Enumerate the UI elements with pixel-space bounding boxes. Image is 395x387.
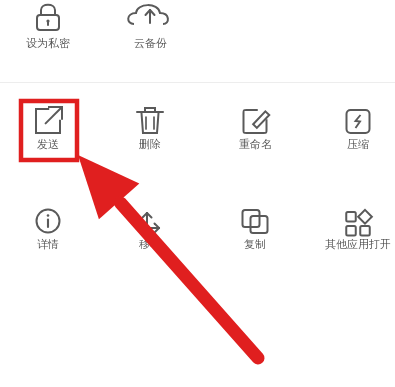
button[interactable]: 其他应用打开 — [310, 201, 395, 263]
staticText: 删除 — [139, 137, 161, 151]
staticText: 重命名 — [239, 137, 272, 151]
button[interactable]: 移动 — [102, 201, 198, 263]
staticText: 其他应用打开 — [325, 237, 391, 251]
button[interactable]: 重命名 — [207, 101, 303, 163]
button[interactable]: 复制 — [207, 201, 303, 263]
staticText: 云备份 — [134, 36, 167, 50]
staticText: 设为私密 — [26, 36, 70, 50]
button[interactable]: 详情 — [0, 201, 96, 263]
staticText: 复制 — [244, 237, 266, 251]
button[interactable]: 云备份 — [102, 0, 198, 60]
staticText: 详情 — [37, 237, 59, 251]
staticText: 发送 — [37, 137, 59, 151]
button[interactable]: 设为私密 — [0, 0, 96, 60]
button[interactable]: 压缩 — [310, 101, 395, 163]
staticText: 压缩 — [347, 137, 369, 151]
staticText: 移动 — [139, 237, 161, 251]
button[interactable]: 发送 — [0, 101, 96, 163]
button[interactable]: 删除 — [102, 101, 198, 163]
